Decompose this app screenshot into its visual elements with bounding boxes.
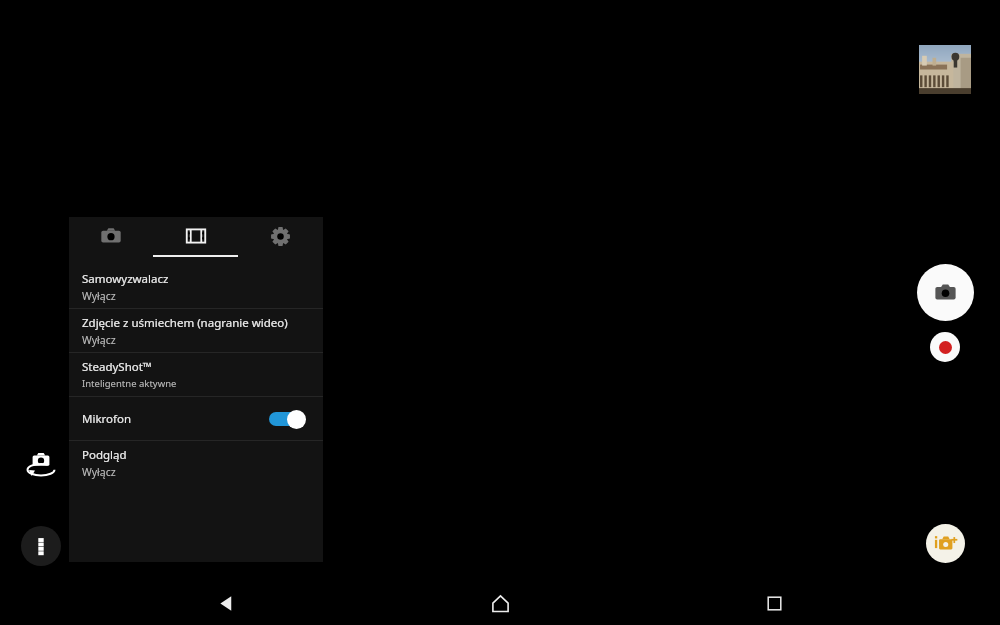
button[interactable]: Record video (930, 332, 960, 362)
button[interactable]: Switch camera (22, 445, 60, 483)
staticText: Samowyzwalacz (82, 271, 169, 287)
button[interactable]: General settings (238, 217, 323, 255)
staticText: SteadyShot™ (82, 359, 152, 375)
button[interactable]: Open gallery (919, 45, 971, 94)
button[interactable]: Capture photo (917, 264, 974, 321)
button[interactable]: Podgląd (69, 441, 323, 484)
button[interactable]: Camera modes (926, 524, 965, 563)
button[interactable]: SteadyShot™ (69, 353, 323, 396)
button[interactable]: Zdjęcie z uśmiechem (nagranie wideo) (69, 309, 323, 352)
button[interactable]: Back (198, 582, 254, 625)
button[interactable]: Home (472, 582, 528, 625)
button[interactable]: Video settings (153, 217, 238, 255)
staticText: Wyłącz (82, 289, 116, 303)
button[interactable]: Mikrofon (69, 397, 323, 440)
staticText: Podgląd (82, 447, 127, 463)
button[interactable]: More options (21, 526, 61, 566)
staticText: Inteligentne aktywne (82, 377, 177, 390)
staticText: Wyłącz (82, 333, 116, 347)
button[interactable]: Photo settings (69, 217, 153, 255)
staticText: Mikrofon (82, 411, 132, 427)
staticText: Zdjęcie z uśmiechem (nagranie wideo) (82, 315, 288, 331)
button[interactable]: Samowyzwalacz (69, 265, 323, 308)
staticText: Wyłącz (82, 465, 116, 479)
button[interactable]: Recent apps (746, 582, 802, 625)
